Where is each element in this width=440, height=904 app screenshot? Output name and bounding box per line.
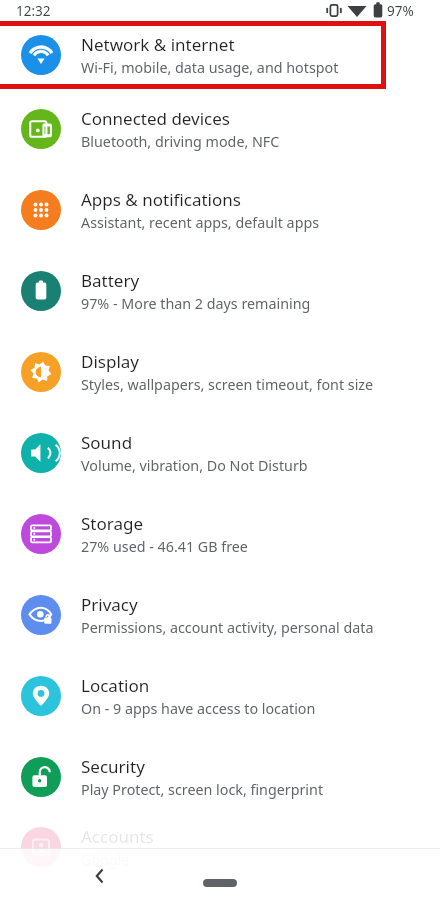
button[interactable]: Sound	[0, 412, 440, 493]
staticText: 97%	[387, 2, 414, 20]
staticText: Display	[81, 350, 139, 373]
staticText: Sound	[81, 431, 133, 454]
staticText: Wi-Fi, mobile, data usage, and hotspot	[81, 58, 339, 77]
button[interactable]: Security	[0, 736, 440, 817]
staticText: Bluetooth, driving mode, NFC	[81, 132, 280, 151]
staticText: Privacy	[81, 593, 138, 616]
staticText: Network & internet	[81, 33, 235, 56]
staticText: Apps & notifications	[81, 188, 241, 211]
button[interactable]: Storage	[0, 493, 440, 574]
staticText: Styles, wallpapers, screen timeout, font…	[81, 375, 374, 394]
button[interactable]: Privacy	[0, 574, 440, 655]
button[interactable]: Connected devices	[0, 88, 440, 169]
staticText: 97% - More than 2 days remaining	[81, 294, 311, 313]
staticText: Security	[81, 755, 145, 778]
staticText: Connected devices	[81, 107, 231, 130]
staticText: Permissions, account activity, personal …	[81, 618, 374, 637]
staticText: Location	[81, 674, 150, 697]
button[interactable]: Location	[0, 655, 440, 736]
button[interactable]: Home	[185, 868, 255, 898]
button[interactable]: Network & internet	[0, 21, 440, 88]
button[interactable]: Apps & notifications	[0, 169, 440, 250]
staticText: 27% used - 46.41 GB free	[81, 537, 248, 556]
staticText: Battery	[81, 269, 140, 292]
staticText: Accounts	[81, 825, 154, 848]
button[interactable]: Display	[0, 331, 440, 412]
staticText: Volume, vibration, Do Not Disturb	[81, 456, 308, 475]
staticText: Assistant, recent apps, default apps	[81, 213, 320, 232]
staticText: Play Protect, screen lock, fingerprint	[81, 780, 324, 799]
button[interactable]: Accounts	[0, 817, 440, 877]
staticText: Storage	[81, 512, 144, 535]
button[interactable]: Back	[80, 856, 120, 896]
staticText: 12:32	[16, 2, 51, 20]
button[interactable]: Battery	[0, 250, 440, 331]
staticText: On - 9 apps have access to location	[81, 699, 316, 718]
